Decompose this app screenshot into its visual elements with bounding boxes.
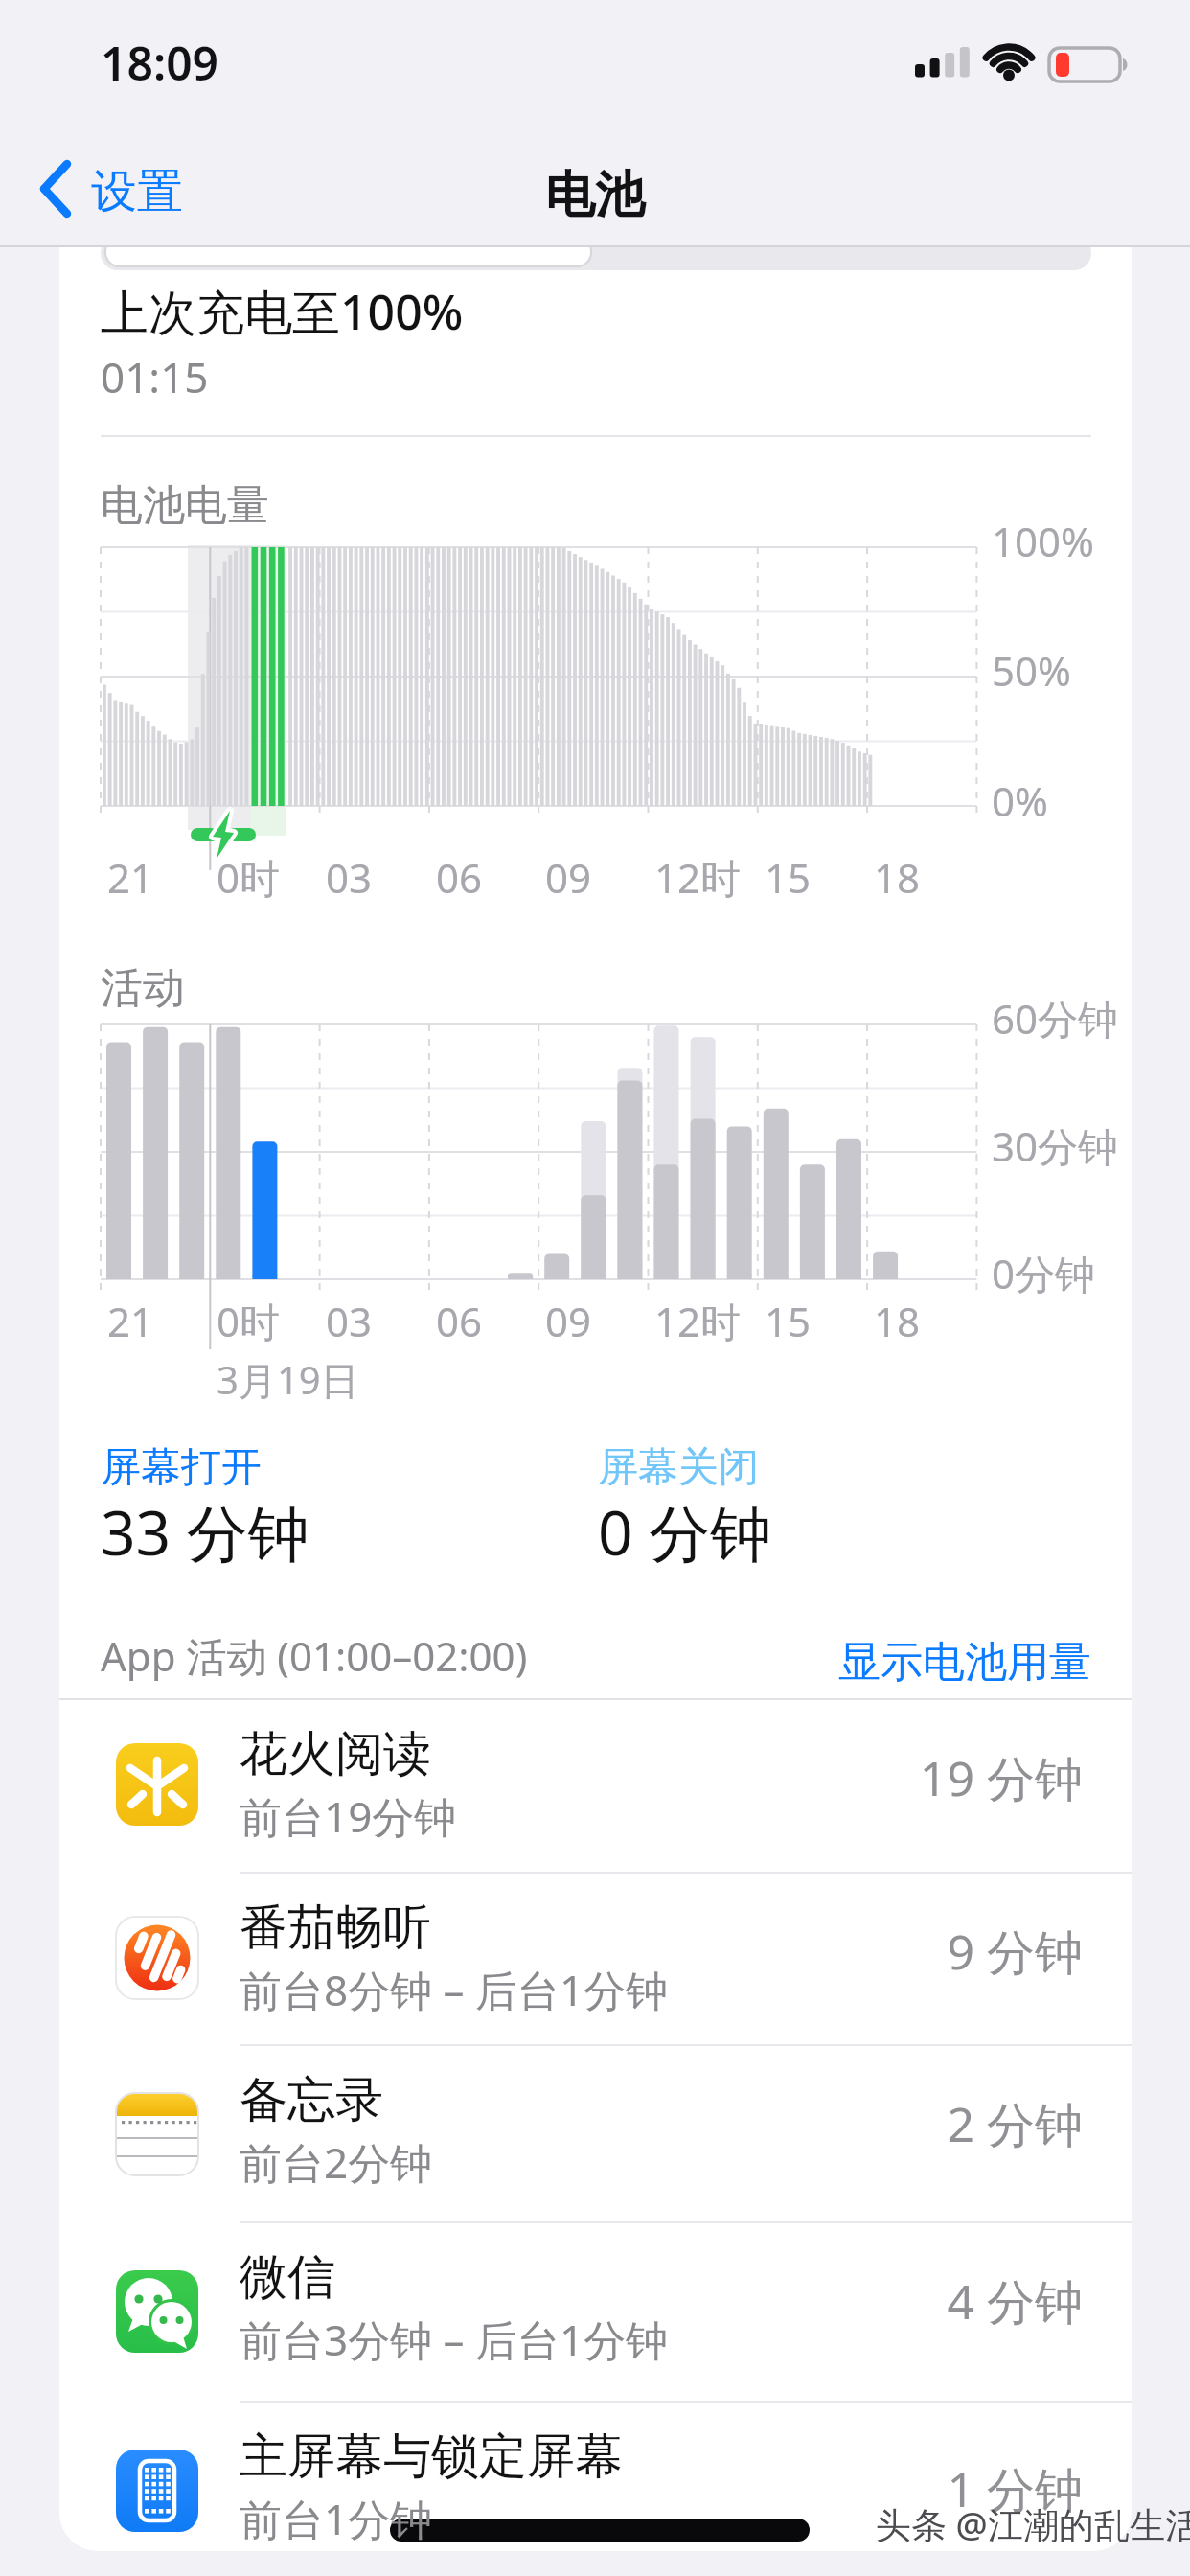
staticText: 花火阅读 [240,1724,431,1784]
staticText: 19 分钟 [220,1745,1083,1810]
staticText: 0时 [217,850,281,905]
staticText: 21 [107,850,154,905]
staticText: 前台8分钟 – 后台1分钟 [240,1961,669,2018]
button[interactable] [59,2045,1132,2218]
staticText: 0时 [217,1294,281,1348]
staticText: 100% [992,514,1094,568]
staticText: 前台19分钟 [240,1787,457,1845]
button[interactable] [59,1873,1132,2045]
staticText: 电池 [0,164,1190,227]
staticText: 微信 [240,2247,335,2308]
staticText: 0% [992,773,1048,828]
staticText: 33 分钟 [101,1490,309,1574]
staticText: 屏幕关闭 [598,1442,759,1493]
staticText: 15 [765,1294,812,1348]
staticText: 21 [107,1294,154,1348]
staticText: 3月19日 [217,1353,359,1406]
staticText: 12时 [654,1294,742,1348]
staticText: 03 [326,850,373,905]
staticText: App 活动 (01:00–02:00) [101,1628,528,1683]
button[interactable] [59,2222,1132,2395]
staticText: 18 [874,850,921,905]
staticText: 09 [545,1294,592,1348]
staticText: 03 [326,1294,373,1348]
staticText: 屏幕打开 [101,1442,262,1493]
staticText: 1 分钟 [220,2456,1083,2521]
button[interactable] [59,1699,1132,1872]
staticText: 备忘录 [240,2070,383,2130]
staticText: 30分钟 [992,1118,1119,1173]
staticText: 电池电量 [101,479,269,532]
staticText: 活动 [101,962,185,1015]
staticText: 0分钟 [992,1246,1096,1300]
staticText: 12时 [654,850,742,905]
staticText: 18 [874,1294,921,1348]
staticText: 18:09 [101,32,219,94]
staticText: 头条 @江潮的乱生活 [876,2499,1190,2548]
staticText: 主屏幕与锁定屏幕 [240,2426,623,2487]
staticText: 60分钟 [992,991,1119,1046]
staticText: 前台2分钟 [240,2133,433,2191]
staticText: 06 [436,1294,483,1348]
staticText: 15 [765,850,812,905]
staticText: 9 分钟 [220,1919,1083,1984]
staticText: 01:15 [101,348,209,405]
staticText: 前台1分钟 [240,2490,433,2547]
staticText: 番茄畅听 [240,1897,431,1958]
staticText: 0 分钟 [598,1490,772,1574]
staticText: 09 [545,850,592,905]
staticText: 2 分钟 [220,2091,1083,2156]
button[interactable]: 显示电池用量 [229,1636,1091,1689]
staticText: 4 分钟 [220,2268,1083,2334]
button[interactable] [59,2402,1132,2574]
button[interactable]: 设置 [91,163,183,220]
staticText: 前台3分钟 – 后台1分钟 [240,2311,669,2368]
staticText: 50% [992,643,1071,698]
staticText: 06 [436,850,483,905]
staticText: 上次充电至100% [101,279,464,344]
